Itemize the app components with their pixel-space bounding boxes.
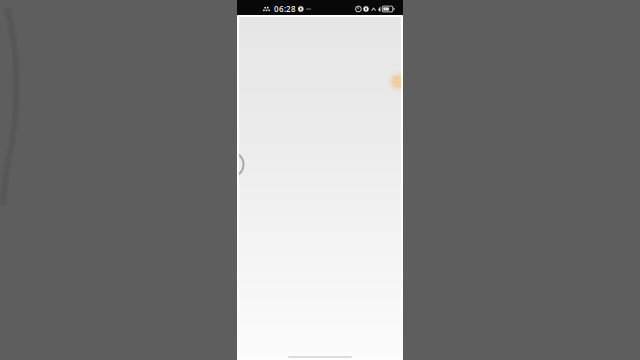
staticText: 06:28	[274, 4, 296, 14]
